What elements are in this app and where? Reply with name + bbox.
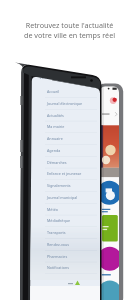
button[interactable] xyxy=(0,0,139,300)
